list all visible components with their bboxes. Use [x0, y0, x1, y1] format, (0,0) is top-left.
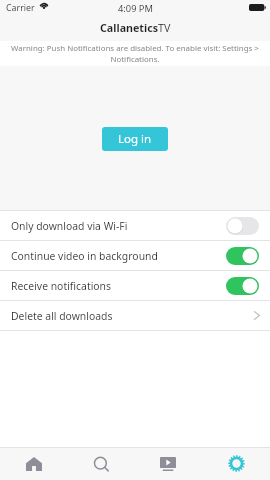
staticText: Carrier	[6, 2, 35, 14]
button[interactable]: Delete all downloads	[0, 301, 270, 330]
staticText: Delete all downloads	[11, 309, 113, 323]
staticText: Warning: Push Notifications are disabled…	[9, 43, 261, 64]
staticText: CallaneticsTV	[100, 21, 171, 36]
button[interactable]: Log in	[102, 127, 168, 151]
staticText: Receive notifications	[11, 279, 112, 293]
staticText: Continue video in background	[11, 249, 158, 263]
button[interactable]: Settings	[202, 448, 270, 480]
button[interactable]: Home	[0, 448, 67, 480]
button[interactable]: Continue video in background	[0, 241, 270, 270]
button[interactable]: Search	[67, 448, 134, 480]
staticText: Only download via Wi-Fi	[11, 219, 128, 233]
button[interactable]: Only download via Wi-Fi	[0, 211, 270, 240]
staticText: Log in	[118, 131, 152, 147]
button[interactable]: Videos	[134, 448, 202, 480]
button[interactable]: Receive notifications	[0, 271, 270, 300]
staticText: 4:09 PM	[118, 2, 153, 15]
